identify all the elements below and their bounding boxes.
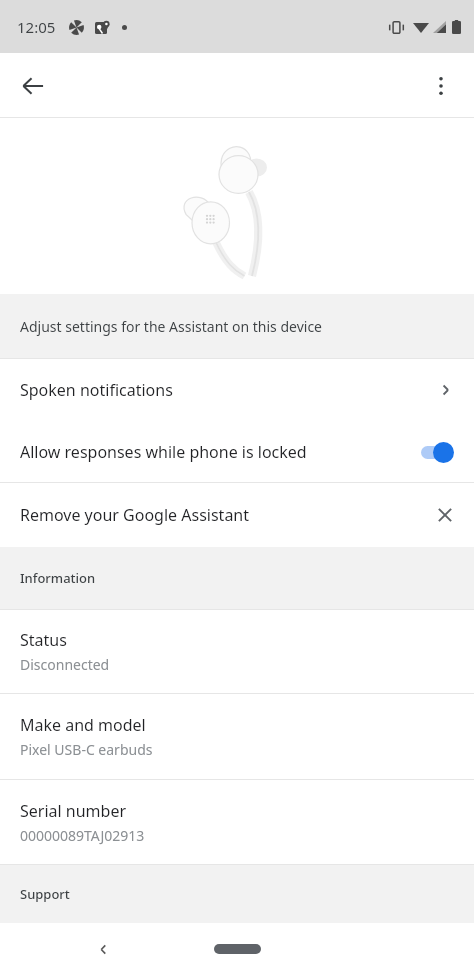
staticText: Pixel USB-C earbuds [20, 740, 153, 759]
button[interactable]: Make and model [0, 694, 474, 779]
staticText: Status [20, 629, 67, 651]
button[interactable]: More options [418, 63, 464, 109]
button[interactable]: Status [0, 610, 474, 693]
button[interactable]: Back [10, 63, 56, 109]
button[interactable]: Allow responses while phone is locked [0, 421, 474, 482]
staticText: Support [20, 885, 70, 903]
button[interactable]: Serial number [0, 780, 474, 864]
staticText: Adjust settings for the Assistant on thi… [20, 317, 323, 336]
button[interactable]: Home [201, 934, 273, 964]
staticText: Serial number [20, 800, 127, 822]
staticText: Make and model [20, 714, 146, 736]
staticText: Information [20, 569, 96, 587]
button[interactable]: Spoken notifications [0, 359, 474, 421]
button[interactable]: Remove your Google Assistant [0, 483, 474, 547]
staticText: 00000089TAJ02913 [20, 826, 145, 845]
staticText: Allow responses while phone is locked [20, 441, 420, 463]
staticText: 12:05 [17, 17, 56, 37]
staticText: Remove your Google Assistant [20, 504, 436, 526]
staticText: Spoken notifications [20, 379, 436, 401]
button[interactable]: Back [80, 926, 126, 972]
staticText: Disconnected [20, 655, 110, 674]
